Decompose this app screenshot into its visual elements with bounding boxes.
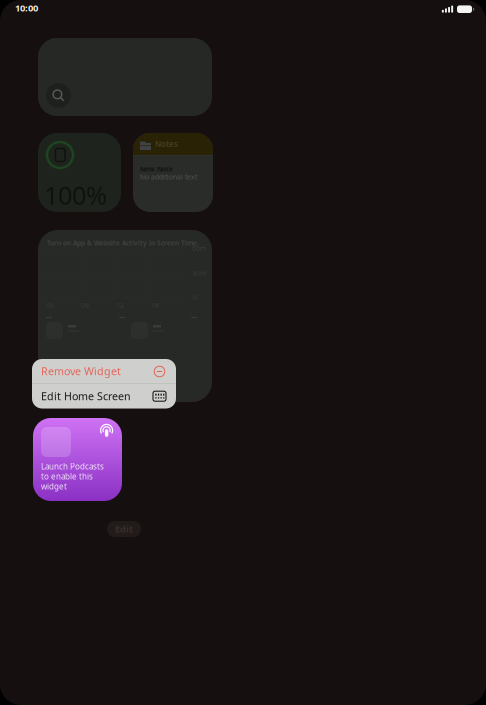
staticText: 00	[46, 301, 54, 309]
staticText: 100%	[44, 178, 107, 212]
button[interactable]: Search	[38, 38, 212, 116]
staticText: No additional text	[140, 173, 197, 181]
button[interactable]: Remove Widget	[32, 359, 176, 383]
button[interactable]: Edit Home Screen	[32, 384, 176, 408]
button[interactable]: Notes	[133, 133, 213, 212]
staticText: Edit	[115, 523, 133, 535]
staticText: Notes	[155, 139, 178, 149]
staticText: --	[46, 310, 52, 323]
button[interactable]: Launch Podcasts	[33, 418, 122, 501]
staticText: Edit Home Screen	[41, 389, 131, 403]
staticText: 0	[193, 293, 197, 301]
staticText: 30m	[192, 269, 206, 277]
staticText: Remove Widget	[41, 364, 121, 378]
staticText: 06	[81, 301, 89, 309]
staticText: --	[119, 310, 125, 323]
staticText: Turn on App & Website Activity in Screen…	[47, 239, 199, 247]
staticText: New Note	[140, 165, 173, 173]
staticText: 10:00	[15, 2, 38, 14]
button[interactable]: 100%	[38, 133, 121, 212]
staticText: 60m	[192, 244, 206, 253]
staticText: 18	[151, 301, 159, 309]
staticText: 12	[116, 301, 124, 309]
button[interactable]: Turn on App & Website Activity in Screen…	[38, 230, 212, 402]
staticText: widget	[41, 481, 67, 492]
staticText: --	[191, 310, 197, 323]
staticText: Launch Podcasts	[41, 461, 104, 472]
button[interactable]: Edit	[107, 521, 141, 537]
staticText: to enable this	[41, 471, 93, 482]
